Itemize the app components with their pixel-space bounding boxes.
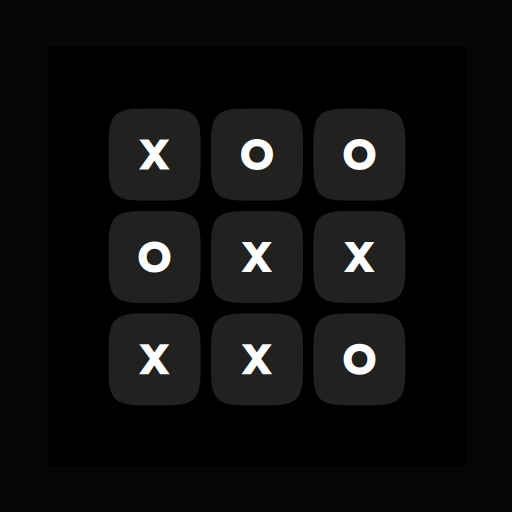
- staticText: X: [139, 334, 171, 385]
- button[interactable]: X: [313, 211, 405, 303]
- staticText: X: [139, 129, 171, 180]
- staticText: O: [138, 231, 172, 283]
- staticText: X: [343, 231, 375, 283]
- staticText: X: [241, 334, 273, 385]
- button[interactable]: O: [313, 313, 405, 405]
- button[interactable]: X: [109, 313, 201, 405]
- staticText: O: [342, 334, 376, 385]
- button[interactable]: O: [313, 109, 405, 201]
- button[interactable]: X: [211, 313, 303, 405]
- staticText: O: [240, 129, 274, 180]
- button[interactable]: O: [109, 211, 201, 303]
- staticText: X: [241, 231, 273, 283]
- button[interactable]: X: [109, 109, 201, 201]
- staticText: O: [342, 129, 376, 180]
- button[interactable]: O: [211, 109, 303, 201]
- button[interactable]: X: [211, 211, 303, 303]
